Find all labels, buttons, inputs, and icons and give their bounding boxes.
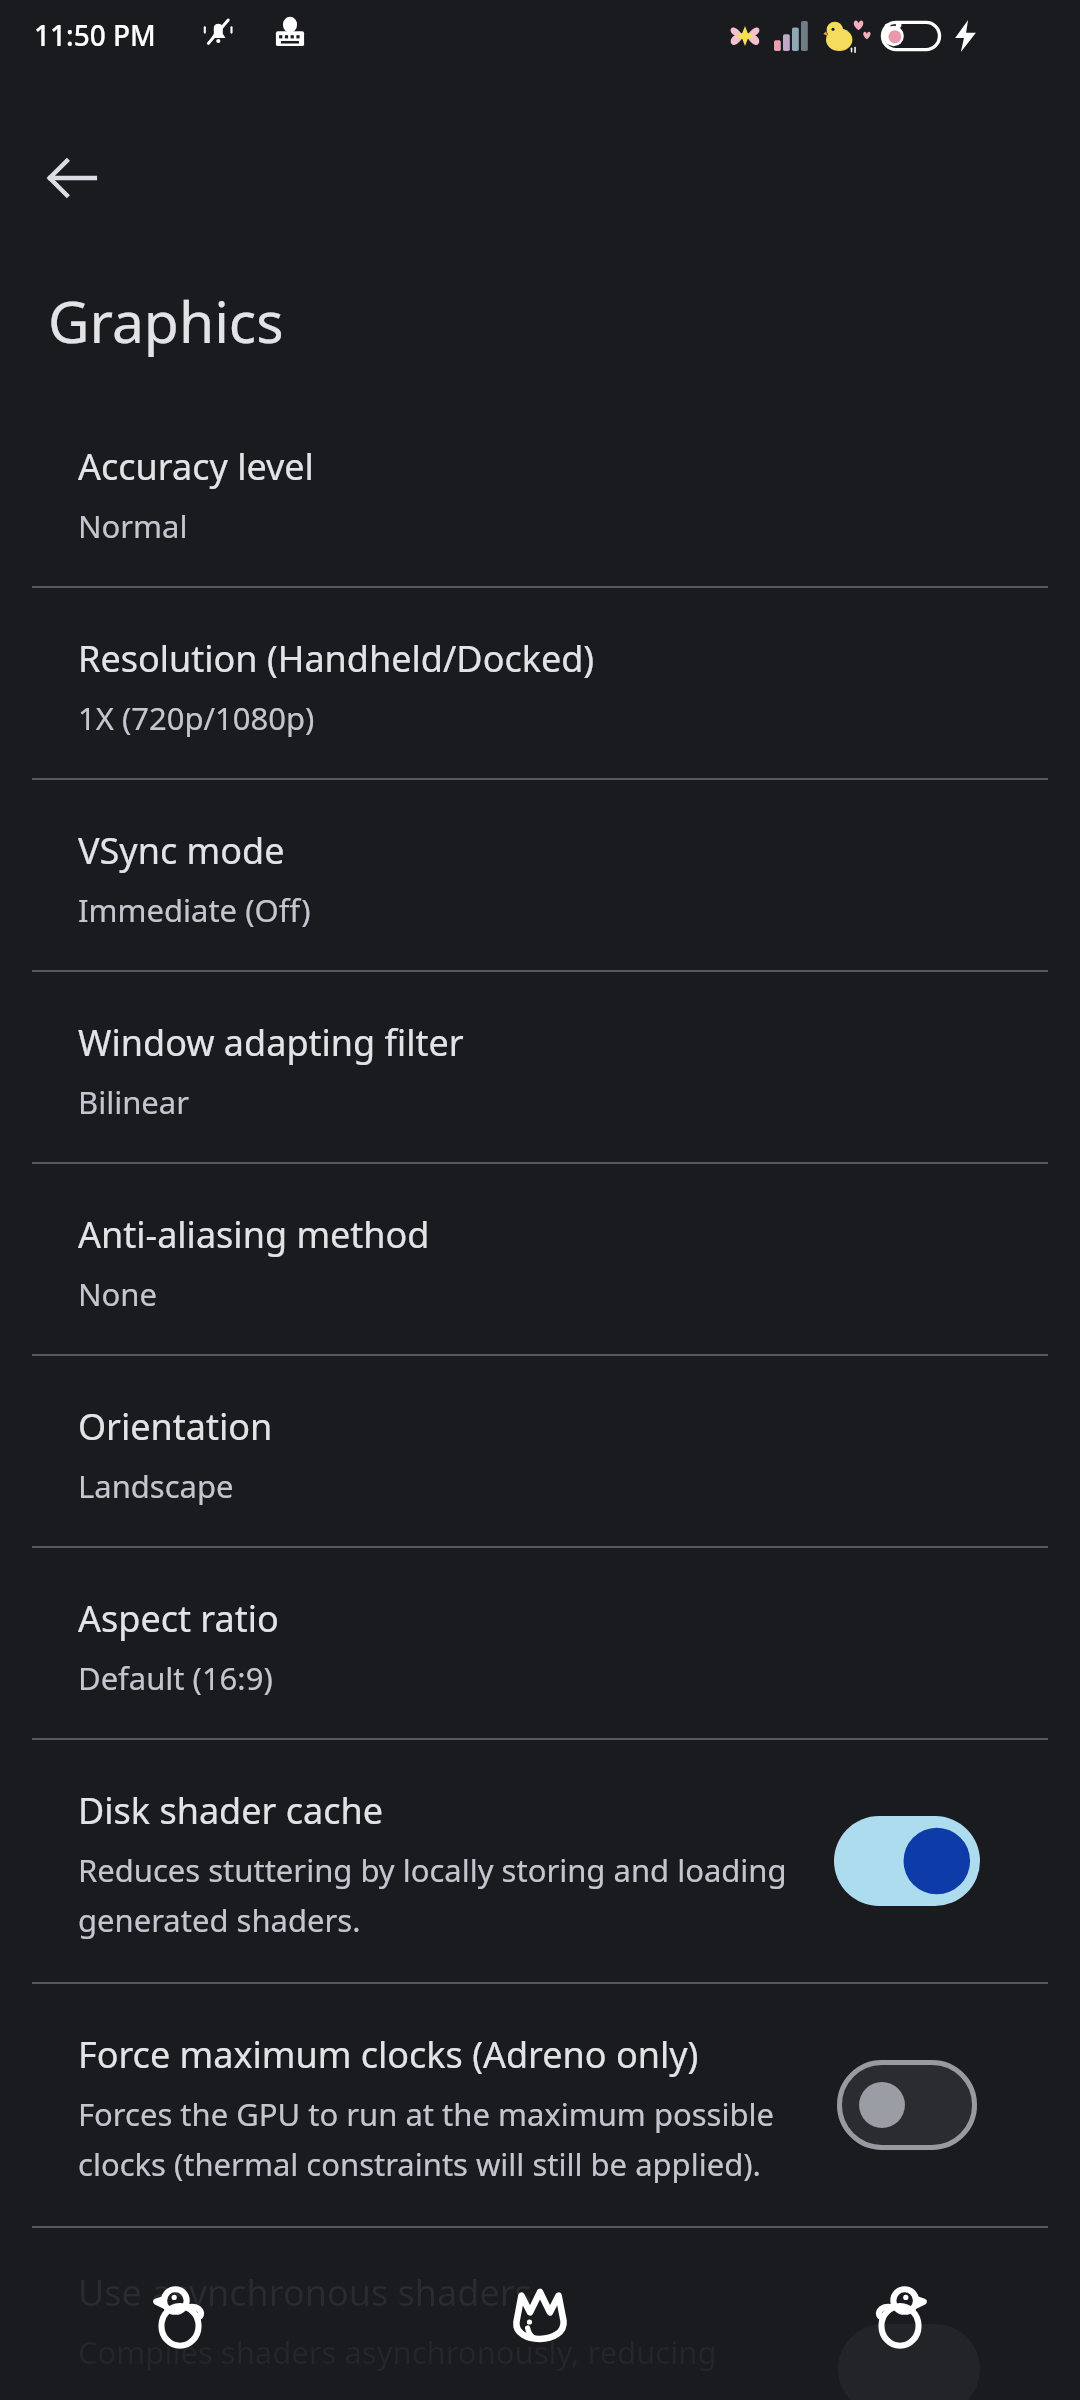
staticText: Force maximum clocks (Adreno only) — [78, 2030, 699, 2079]
staticText: Window adapting filter — [78, 1018, 464, 1067]
staticText: Orientation — [78, 1402, 273, 1451]
button[interactable]: Use asynchronous shaders — [0, 2228, 1080, 2400]
button[interactable]: Resolution (Handheld/Docked) — [0, 588, 1080, 778]
button[interactable]: Home — [360, 2260, 720, 2400]
button[interactable]: Disk shader cache — [822, 1801, 992, 1921]
staticText: Resolution (Handheld/Docked) — [78, 634, 595, 683]
button[interactable]: Aspect ratio — [0, 1548, 1080, 1738]
button[interactable]: Orientation — [0, 1356, 1080, 1546]
button[interactable]: Back — [0, 2260, 360, 2400]
button[interactable]: Anti-aliasing method — [0, 1164, 1080, 1354]
button[interactable]: Window adapting filter — [0, 972, 1080, 1162]
staticText: generated shaders. — [78, 1899, 361, 1941]
staticText: Aspect ratio — [78, 1594, 279, 1643]
staticText: Normal — [78, 505, 188, 547]
button[interactable]: Recent apps — [720, 2260, 1080, 2400]
staticText: Use asynchronous shaders — [78, 2268, 532, 2317]
staticText: VSync mode — [78, 826, 285, 875]
staticText: Bilinear — [78, 1081, 189, 1123]
staticText: Compiles shaders asynchronously, reducin… — [78, 2331, 717, 2373]
staticText: Anti-aliasing method — [78, 1210, 430, 1259]
staticText: 11:50 PM — [34, 16, 156, 54]
button[interactable]: Disk shader cache — [0, 1740, 1080, 1982]
staticText: Default (16:9) — [78, 1657, 273, 1699]
staticText: None — [78, 1273, 157, 1315]
staticText: clocks (thermal constraints will still b… — [78, 2143, 761, 2185]
staticText: Graphics — [48, 282, 284, 360]
staticText: Disk shader cache — [78, 1786, 384, 1835]
button[interactable]: Accuracy level — [0, 396, 1080, 586]
button[interactable]: Force maximum clocks (Adreno only) — [822, 2045, 992, 2165]
staticText: Reduces stuttering by locally storing an… — [78, 1849, 787, 1891]
staticText: Immediate (Off) — [78, 889, 311, 931]
button[interactable]: VSync mode — [0, 780, 1080, 970]
staticText: 1X (720p/1080p) — [78, 697, 315, 739]
staticText: Landscape — [78, 1465, 234, 1507]
button[interactable]: Force maximum clocks (Adreno only) — [0, 1984, 1080, 2226]
button[interactable]: Back — [20, 126, 124, 230]
staticText: Accuracy level — [78, 442, 314, 491]
staticText: Forces the GPU to run at the maximum pos… — [78, 2093, 774, 2135]
